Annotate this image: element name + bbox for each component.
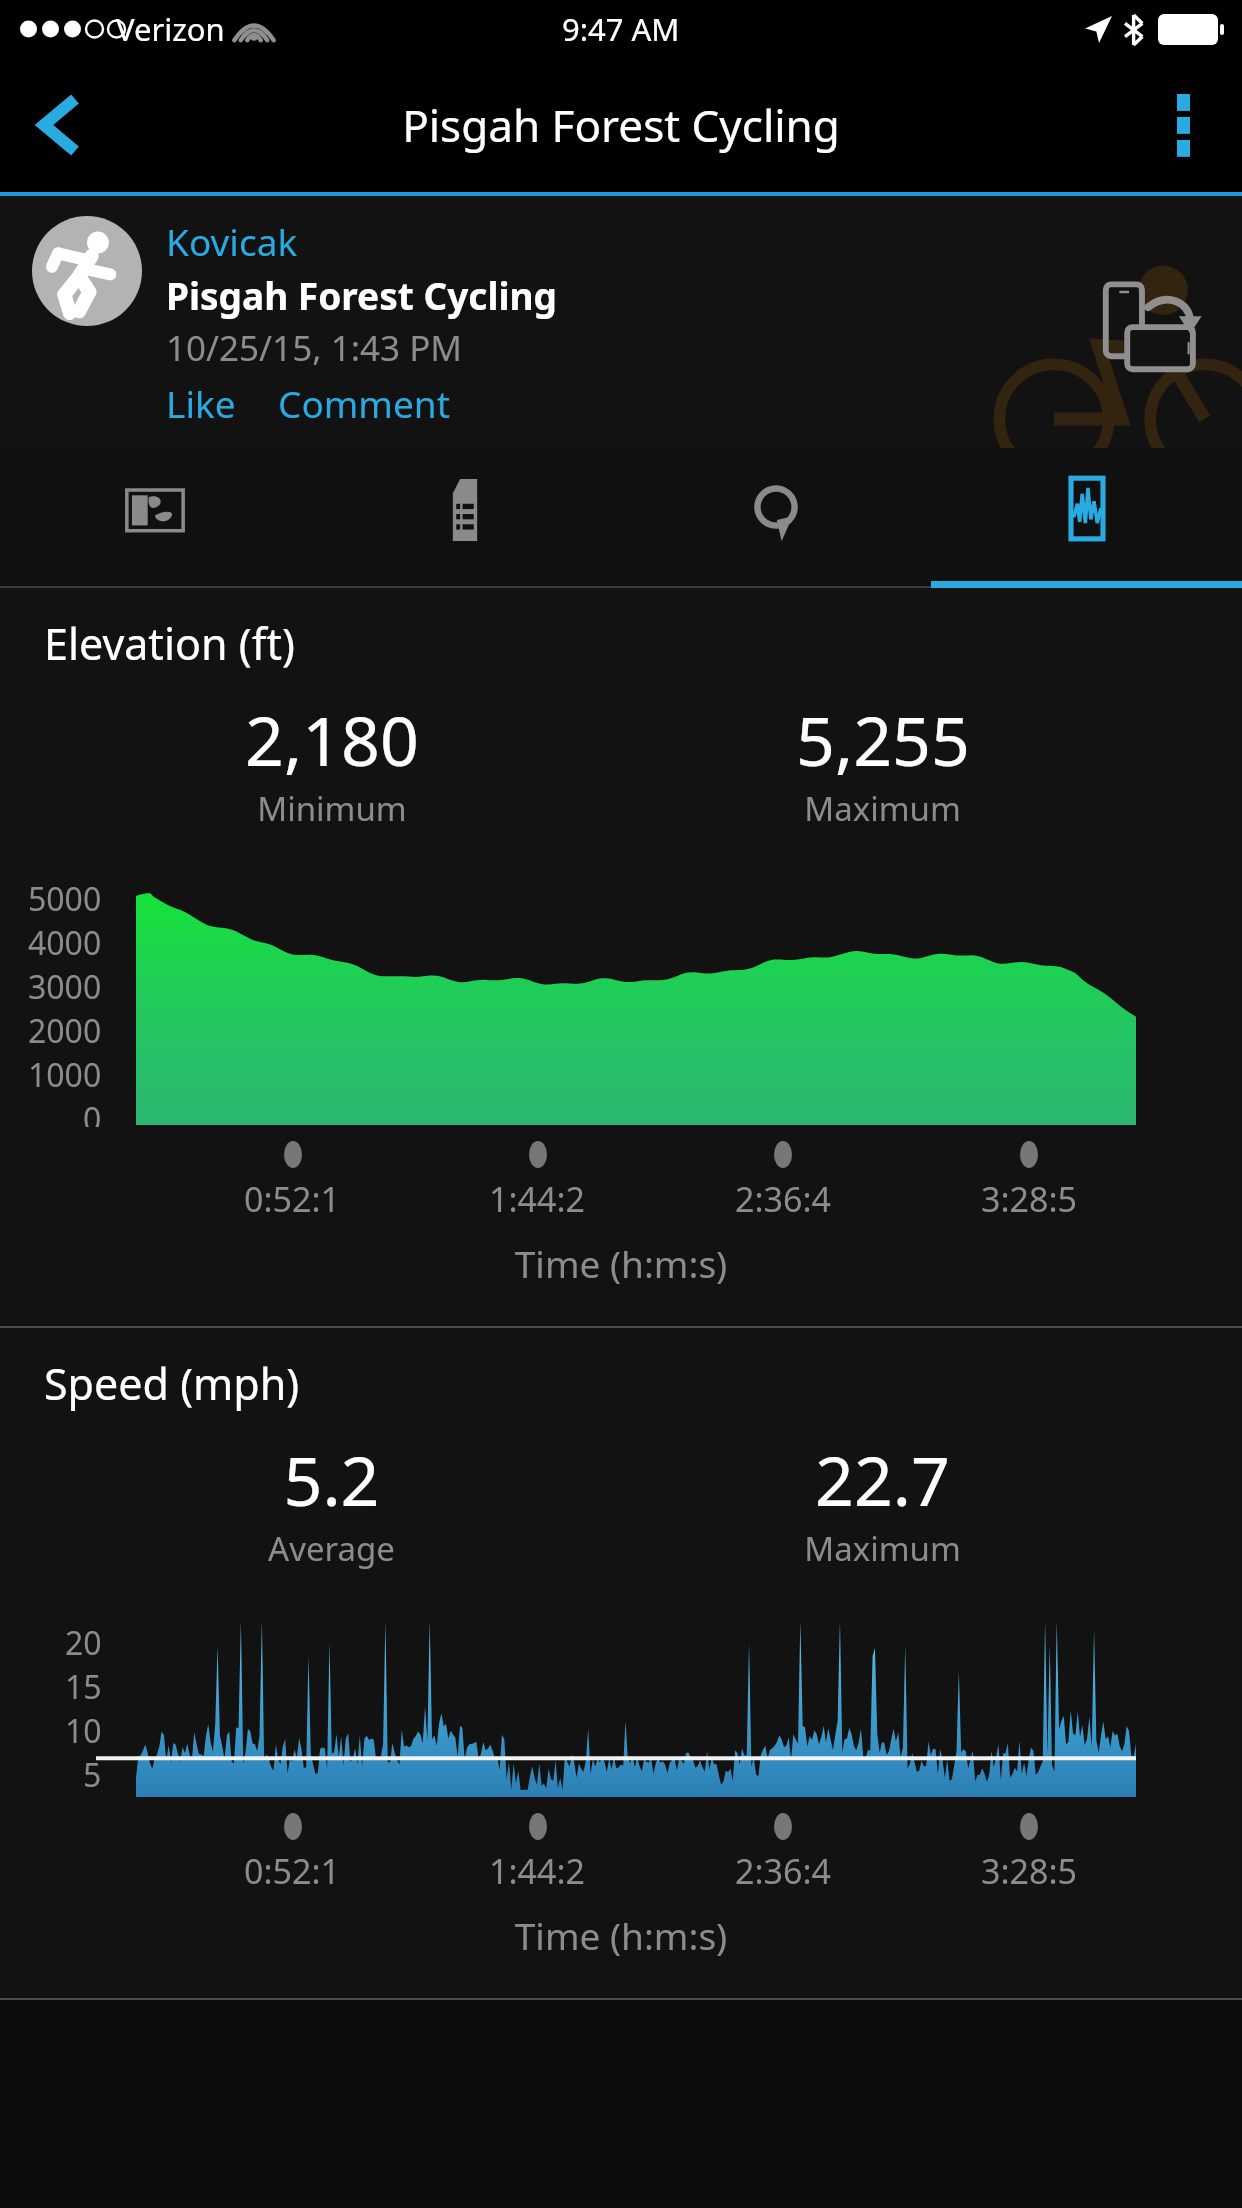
button[interactable]: Profile photo: [32, 216, 142, 326]
staticText: Time (h:m:s): [0, 1238, 1242, 1288]
staticText: 20: [65, 1621, 102, 1665]
staticText: 5.2: [283, 1433, 380, 1526]
staticText: Pisgah Forest Cycling: [166, 270, 557, 320]
staticText: 1:44:2: [489, 1176, 586, 1222]
staticText: 0:52:1: [244, 1176, 341, 1222]
staticText: 2:36:4: [735, 1176, 832, 1222]
button[interactable]: Rotate device: [1072, 255, 1224, 389]
staticText: 2000: [28, 1009, 102, 1053]
staticText: 2:36:4: [735, 1848, 832, 1894]
staticText: 1:44:2: [489, 1848, 586, 1894]
staticText: Average: [268, 1526, 395, 1571]
button[interactable]: Laps: [620, 448, 931, 588]
staticText: Speed (mph): [44, 1354, 300, 1413]
staticText: Minimum: [257, 786, 407, 831]
staticText: 22.7: [815, 1433, 950, 1526]
staticText: 5,255: [796, 693, 970, 786]
button[interactable]: Kovicak: [166, 216, 298, 266]
staticText: Pisgah Forest Cycling: [402, 95, 840, 155]
button[interactable]: Graphs: [931, 448, 1242, 588]
staticText: 0: [83, 1097, 102, 1127]
button[interactable]: Back: [0, 66, 118, 184]
staticText: 3:28:5: [981, 1848, 1078, 1894]
staticText: 10: [65, 1709, 102, 1753]
staticText: 9:47 AM: [562, 8, 680, 50]
staticText: Verizon: [116, 8, 225, 50]
button[interactable]: More options: [1124, 66, 1242, 184]
staticText: Like: [166, 378, 236, 428]
staticText: Kovicak: [166, 216, 298, 266]
staticText: Time (h:m:s): [0, 1910, 1242, 1960]
staticText: 1000: [28, 1053, 102, 1097]
staticText: 3000: [28, 965, 102, 1009]
staticText: Maximum: [804, 1526, 961, 1571]
button[interactable]: Details: [310, 448, 620, 588]
staticText: 15: [65, 1665, 102, 1709]
staticText: 10/25/15, 1:43 PM: [166, 324, 463, 372]
staticText: 0:52:1: [244, 1848, 341, 1894]
staticText: Comment: [278, 378, 451, 428]
staticText: 2,180: [245, 693, 419, 786]
staticText: 3:28:5: [981, 1176, 1078, 1222]
staticText: 5000: [28, 877, 102, 921]
staticText: Elevation (ft): [44, 614, 295, 673]
staticText: 5: [83, 1753, 102, 1797]
button[interactable]: Map: [0, 448, 310, 588]
button[interactable]: Comment: [278, 378, 451, 428]
button[interactable]: Like: [166, 378, 236, 428]
staticText: Maximum: [804, 786, 961, 831]
staticText: 4000: [28, 921, 102, 965]
